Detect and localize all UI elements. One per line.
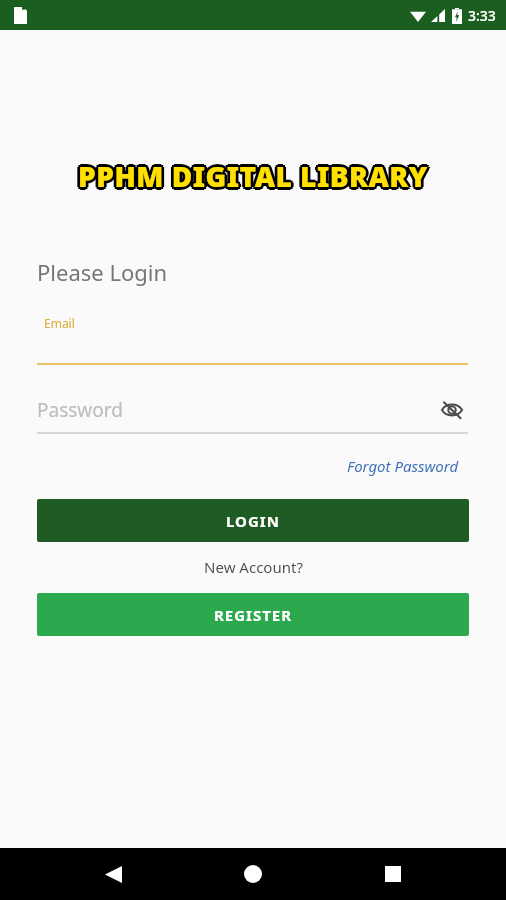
button[interactable]: Show password — [438, 396, 466, 424]
staticText: REGISTER — [214, 605, 293, 625]
staticText: PPHM DIGITAL LIBRARY — [81, 157, 431, 195]
button[interactable]: Home — [232, 853, 274, 895]
staticText: New Account? — [204, 557, 303, 577]
staticText: Forgot Password — [347, 456, 459, 476]
button[interactable]: Password — [0, 388, 506, 432]
staticText: LOGIN — [226, 511, 280, 531]
staticText: PPHM DIGITAL LIBRARY — [76, 159, 426, 197]
button[interactable]: Forgot Password — [347, 456, 459, 476]
staticText: PPHM DIGITAL LIBRARY — [78, 157, 428, 195]
button[interactable]: Recent apps — [372, 853, 414, 895]
staticText: Email — [44, 315, 75, 331]
staticText: PPHM DIGITAL LIBRARY — [80, 155, 430, 193]
staticText: Please Login — [37, 257, 168, 287]
button[interactable]: LOGIN — [37, 499, 469, 542]
staticText: PPHM DIGITAL LIBRARY — [78, 154, 428, 192]
staticText: PPHM DIGITAL LIBRARY — [78, 160, 428, 198]
staticText: PPHM DIGITAL LIBRARY — [76, 157, 426, 195]
staticText: 3:33 — [468, 6, 496, 25]
button[interactable]: Email — [0, 311, 506, 363]
button[interactable]: REGISTER — [37, 593, 469, 636]
staticText: PPHM DIGITAL LIBRARY — [80, 157, 430, 195]
button[interactable]: Back — [92, 853, 134, 895]
staticText: PPHM DIGITAL LIBRARY — [78, 155, 428, 193]
staticText: PPHM DIGITAL LIBRARY — [76, 155, 426, 193]
staticText: PPHM DIGITAL LIBRARY — [75, 157, 425, 195]
staticText: PPHM DIGITAL LIBRARY — [78, 159, 428, 197]
staticText: Password — [37, 397, 123, 423]
staticText: PPHM DIGITAL LIBRARY — [80, 159, 430, 197]
